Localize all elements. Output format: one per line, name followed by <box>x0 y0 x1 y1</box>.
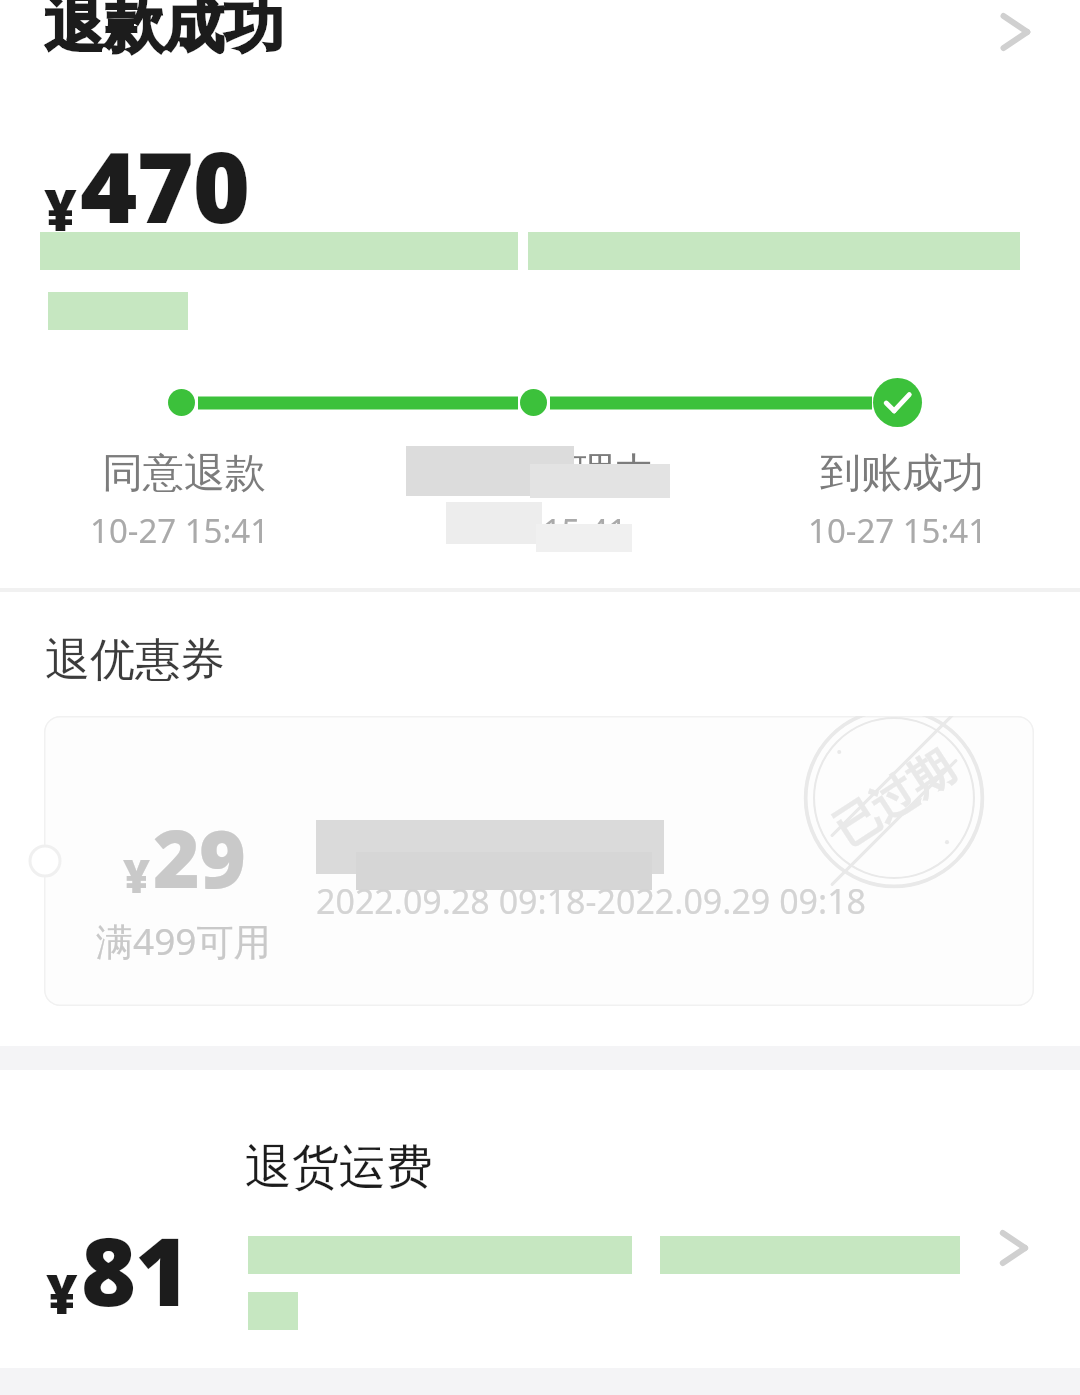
staticText: 已过期 <box>824 739 964 857</box>
staticText: 10-27 15:41 <box>448 508 628 553</box>
button[interactable]: 查看详情 <box>992 0 1056 64</box>
staticText: ¥ <box>46 1256 78 1330</box>
staticText: 退款成功 <box>44 0 284 64</box>
staticText: ¥ <box>44 171 77 247</box>
staticText: 退优惠券 <box>45 632 225 689</box>
staticText: 满499可用 <box>96 915 271 966</box>
staticText: ¥ <box>123 844 150 907</box>
button[interactable]: ¥ <box>44 716 1034 1006</box>
button[interactable] <box>0 1070 1080 1366</box>
button[interactable]: 退款成功 <box>0 0 1080 96</box>
staticText: 多久到处理中 <box>410 448 656 500</box>
staticText: 81 <box>81 1206 190 1334</box>
staticText: 2022.09.28 09:18-2022.09.29 09:18 <box>316 878 867 924</box>
staticText: 29 <box>153 802 245 911</box>
staticText: 10-27 15:41 <box>808 508 988 553</box>
staticText: 470 <box>80 118 250 251</box>
staticText: 退货运费 <box>245 1138 433 1197</box>
staticText: 到账成功 <box>820 448 984 500</box>
staticText: 同意退款 <box>102 448 266 500</box>
button[interactable]: 查看运费详情 <box>992 1218 1052 1278</box>
staticText: 10-27 15:41 <box>90 508 270 553</box>
